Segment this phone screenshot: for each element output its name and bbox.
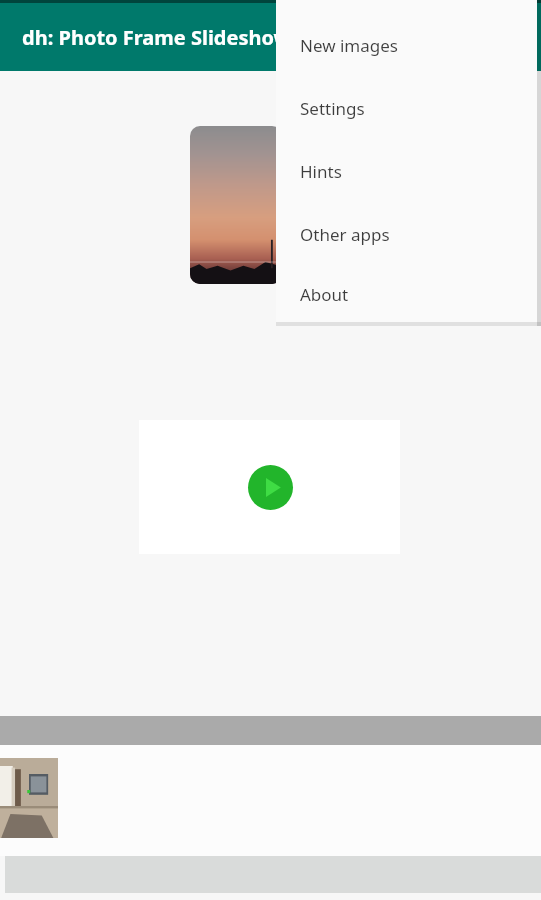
button[interactable]: New images	[276, 14, 537, 77]
staticText: Other apps	[300, 223, 390, 246]
button[interactable]: Hints	[276, 140, 537, 203]
button[interactable]: Start slideshow	[139, 420, 400, 554]
button[interactable]: Settings	[276, 77, 537, 140]
staticText: Hints	[300, 160, 342, 183]
staticText: Settings	[300, 97, 365, 120]
button[interactable]: About	[276, 266, 537, 322]
button[interactable]: Play	[246, 463, 294, 511]
button[interactable]	[190, 126, 282, 284]
staticText: dh: Photo Frame Slideshow	[22, 24, 291, 51]
staticText: About	[300, 283, 349, 306]
button[interactable]: Photo thumbnail	[0, 758, 58, 838]
staticText: New images	[300, 34, 398, 57]
button[interactable]: Other apps	[276, 203, 537, 266]
